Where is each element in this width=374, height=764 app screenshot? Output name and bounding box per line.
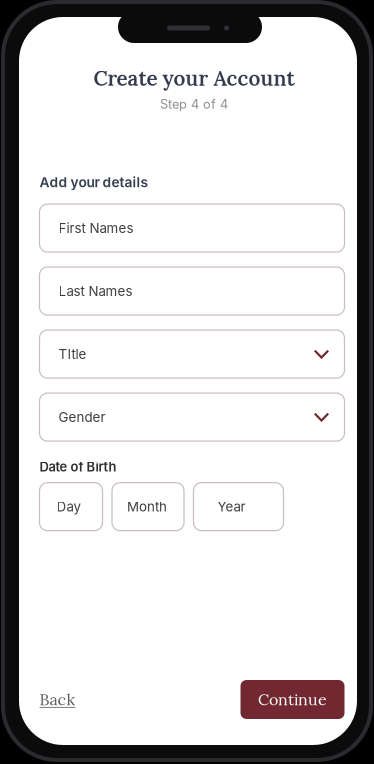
- staticText: Gender: [58, 409, 105, 425]
- staticText: TItle: [58, 346, 86, 362]
- button[interactable]: Day: [39, 483, 102, 531]
- staticText: Month: [127, 499, 167, 515]
- staticText: Add your details: [39, 174, 148, 190]
- staticText: First Names: [58, 220, 133, 236]
- button[interactable]: TItle: [39, 330, 344, 378]
- staticText: Back: [39, 689, 75, 710]
- staticText: Step 4 of 4: [160, 96, 228, 112]
- staticText: Last Names: [58, 283, 132, 299]
- button[interactable]: Continue: [240, 680, 344, 719]
- staticText: Continue: [258, 689, 327, 710]
- staticText: Day: [56, 499, 80, 515]
- button[interactable]: First Names: [39, 204, 344, 252]
- button[interactable]: Gender: [39, 393, 344, 441]
- button[interactable]: Year: [193, 483, 283, 531]
- button[interactable]: Month: [112, 483, 184, 531]
- staticText: Create your Account: [93, 65, 294, 91]
- staticText: Year: [217, 499, 245, 515]
- button[interactable]: Back: [39, 689, 75, 710]
- staticText: Date of Birth: [39, 459, 116, 475]
- button[interactable]: Last Names: [39, 267, 344, 315]
